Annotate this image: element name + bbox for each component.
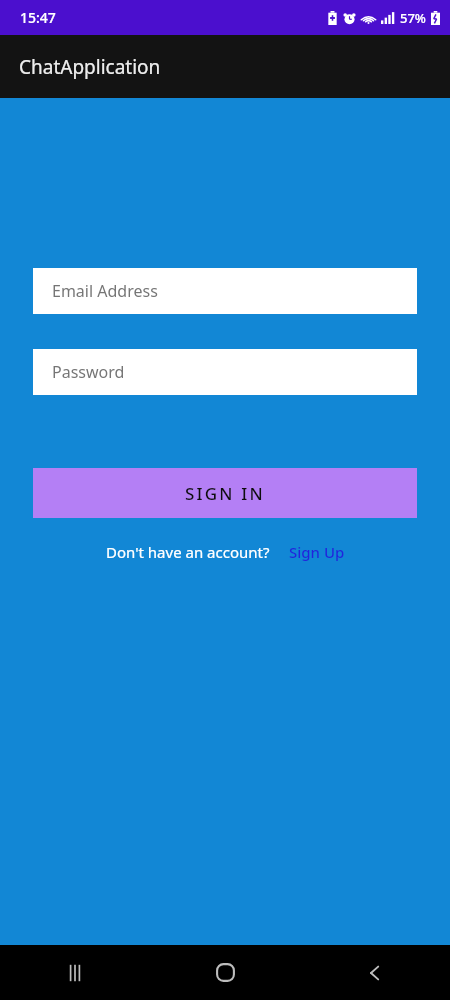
button[interactable]: Back [300,945,450,1000]
button[interactable]: SIGN IN [33,468,417,518]
staticText: SIGN IN [185,482,265,505]
button[interactable]: Sign Up [289,542,345,562]
button[interactable]: Password [33,349,417,395]
button[interactable]: Recent apps [0,945,150,1000]
staticText: Don't have an account? [106,542,270,562]
staticText: 15:47 [20,8,56,27]
staticText: Email Address [52,280,158,302]
button[interactable]: Email Address [33,268,417,314]
staticText: Password [52,361,125,383]
staticText: ChatApplication [19,54,161,80]
button[interactable]: Home [150,945,300,1000]
staticText: Sign Up [289,542,345,562]
staticText: 57% [400,9,426,27]
